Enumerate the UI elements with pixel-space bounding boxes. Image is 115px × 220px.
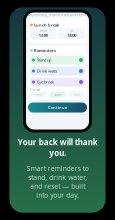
- staticText: Smart reminders to stand, drink water, a…: [26, 164, 88, 199]
- staticText: Adjust timing, reminders and quiet hours: [28, 13, 87, 17]
- staticText: Reminders: [34, 48, 56, 53]
- staticText: Drink water: [37, 68, 58, 74]
- staticText: 13:00: [39, 33, 48, 38]
- staticText: Interval: [30, 88, 40, 92]
- staticText: Continue: [48, 105, 67, 110]
- staticText: To: [70, 29, 73, 33]
- staticText: Your back will thank you.: [17, 137, 97, 158]
- staticText: Eye break: [37, 79, 54, 85]
- staticText: Lunch break: [34, 22, 59, 28]
- staticText: 45m: [54, 93, 60, 96]
- staticText: Stand up: [37, 57, 51, 63]
- staticText: 60m: [73, 93, 79, 96]
- staticText: 30m: [35, 93, 41, 96]
- staticText: 14:00: [67, 33, 76, 38]
- staticText: From: [40, 29, 46, 33]
